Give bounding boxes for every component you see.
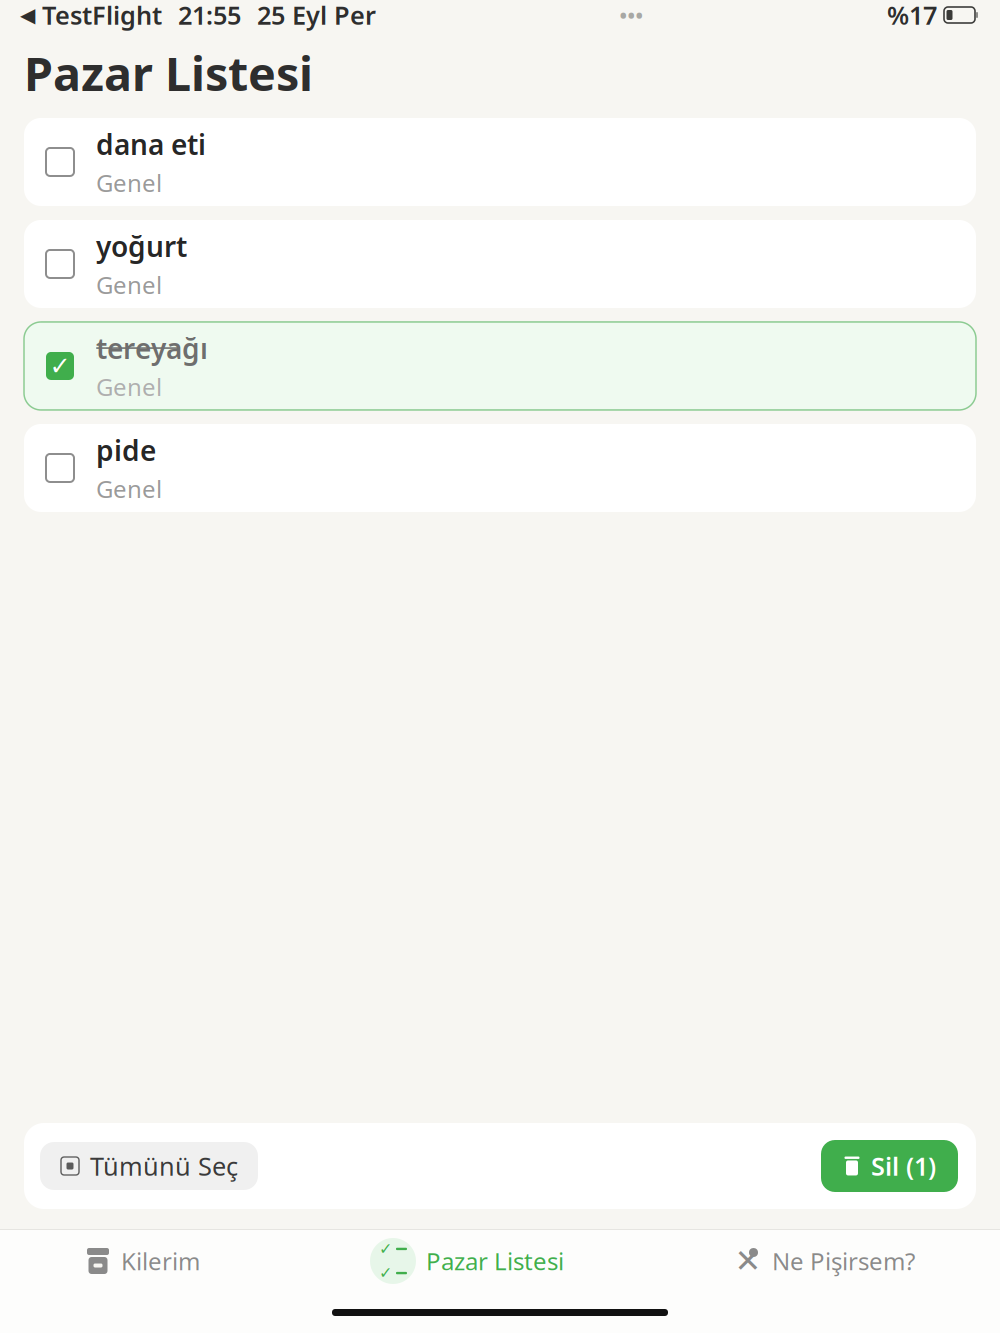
staticText: Sil (1)	[871, 1149, 936, 1183]
button[interactable]: Kilerim	[85, 1232, 200, 1290]
staticText: pide	[96, 431, 156, 469]
button[interactable]: Tümünü Seç	[40, 1142, 258, 1190]
staticText: Ne Pişirsem?	[772, 1245, 915, 1277]
staticText: tereyağı	[96, 329, 208, 367]
button[interactable]: ✓	[370, 1232, 564, 1290]
button[interactable]: dana eti	[24, 118, 976, 206]
staticText: ◀	[20, 4, 35, 26]
staticText: Kilerim	[121, 1245, 200, 1277]
staticText: ✓	[379, 1240, 392, 1258]
staticText: 21:55	[178, 0, 241, 32]
staticText: •••	[619, 2, 643, 28]
staticText: Pazar Listesi	[24, 42, 313, 104]
staticText: 25 Eyl Per	[257, 0, 376, 32]
button[interactable]: Sil (1)	[821, 1140, 958, 1192]
staticText: ✕	[734, 1243, 761, 1279]
staticText: Genel	[96, 167, 162, 198]
button[interactable]: yoğurt	[24, 220, 976, 308]
staticText: %17	[887, 0, 937, 32]
staticText: ✓	[49, 352, 70, 380]
button[interactable]: ✓	[24, 322, 976, 410]
button[interactable]: ✕	[734, 1232, 915, 1290]
staticText: Pazar Listesi	[426, 1245, 564, 1277]
staticText: TestFlight	[35, 0, 162, 32]
staticText: Genel	[96, 371, 162, 402]
staticText: yoğurt	[96, 227, 187, 265]
staticText: Genel	[96, 269, 162, 300]
staticText: dana eti	[96, 125, 206, 163]
staticText: Genel	[96, 473, 162, 504]
staticText: Tümünü Seç	[90, 1149, 238, 1183]
button[interactable]: pide	[24, 424, 976, 512]
staticText: ✓	[379, 1264, 392, 1282]
